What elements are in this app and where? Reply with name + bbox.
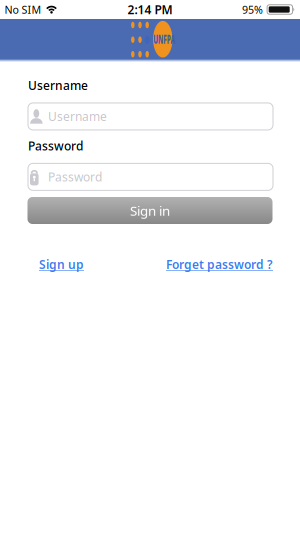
staticText: Password — [48, 169, 102, 185]
button[interactable]: Sign up — [39, 256, 84, 272]
button[interactable]: Sign in — [27, 197, 272, 224]
button[interactable]: Forget password ? — [166, 256, 273, 272]
button[interactable]: Password — [28, 163, 273, 190]
staticText: 2:14 PM — [127, 1, 172, 17]
button[interactable]: Username — [28, 103, 273, 130]
staticText: 95% — [242, 2, 263, 17]
staticText: Username — [28, 77, 88, 93]
staticText: Forget password ? — [166, 256, 273, 272]
staticText: UNFPA — [141, 30, 187, 48]
staticText: Password — [28, 138, 83, 154]
staticText: Sign in — [130, 202, 170, 219]
staticText: Sign up — [39, 256, 84, 272]
staticText: Username — [48, 108, 107, 124]
staticText: No SIM — [4, 2, 41, 17]
